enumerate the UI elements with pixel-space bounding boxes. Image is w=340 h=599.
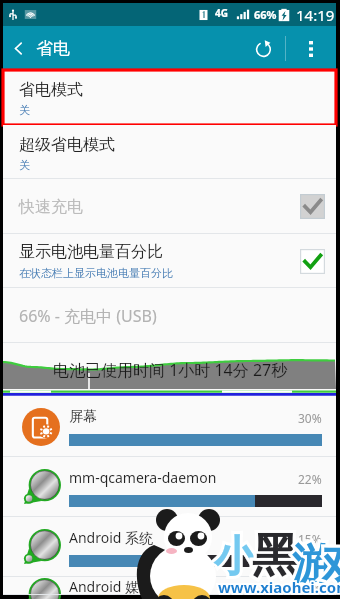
- staticText: 显示电池电量百分比: [19, 242, 163, 262]
- staticText: www.xiaohei.com: [218, 577, 340, 597]
- staticText: 戏: [322, 538, 340, 591]
- button[interactable]: Back: [3, 26, 33, 70]
- staticText: 电池已使用时间 1小时 14分 27秒: [53, 359, 288, 381]
- staticText: 黑: [252, 527, 298, 585]
- staticText: 屏幕: [69, 408, 97, 426]
- staticText: 游: [292, 538, 334, 591]
- staticText: 小: [214, 531, 256, 584]
- staticText: 省电模式: [19, 80, 83, 100]
- staticText: 游: [292, 538, 334, 591]
- staticText: 15%: [298, 531, 322, 547]
- staticText: Android 媒体/Camera: [69, 577, 210, 595]
- staticText: 66%: [254, 7, 277, 22]
- staticText: 超级省电模式: [19, 135, 115, 155]
- staticText: 12%: [298, 579, 322, 595]
- staticText: 4G: [215, 6, 228, 20]
- button[interactable]: 省电模式: [3, 70, 336, 125]
- staticText: 66% - 充电中 (USB): [19, 305, 157, 327]
- button[interactable]: Refresh: [241, 26, 285, 70]
- button[interactable]: 屏幕: [3, 397, 336, 457]
- button[interactable]: More options: [286, 26, 336, 70]
- button[interactable]: mm-qcamera-daemon: [3, 457, 336, 517]
- staticText: 30%: [298, 410, 322, 426]
- staticText: 戏: [322, 538, 340, 591]
- staticText: www.xiaohei.com: [218, 577, 340, 597]
- staticText: 快速充电: [19, 197, 83, 217]
- staticText: 省电: [36, 38, 70, 59]
- staticText: 14:19: [296, 5, 335, 25]
- button[interactable]: Android 系统: [3, 517, 336, 577]
- button[interactable]: 快速充电: [3, 179, 336, 234]
- staticText: mm-qcamera-daemon: [69, 468, 217, 487]
- staticText: 关: [19, 158, 30, 172]
- staticText: 关: [19, 103, 30, 117]
- staticText: 在状态栏上显示电池电量百分比: [19, 266, 173, 280]
- staticText: Android 系统: [69, 528, 154, 547]
- staticText: 黑: [252, 527, 298, 585]
- button[interactable]: Android 媒体/Camera: [3, 577, 336, 595]
- staticText: 小: [214, 531, 256, 584]
- button[interactable]: 显示电池电量百分比: [3, 234, 336, 288]
- staticText: 22%: [298, 471, 322, 487]
- button[interactable]: 超级省电模式: [3, 125, 336, 179]
